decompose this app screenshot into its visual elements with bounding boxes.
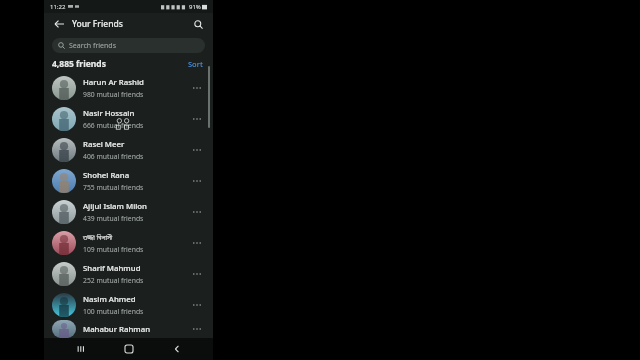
- staticText: Ajijul Islam Milon: [83, 201, 147, 212]
- staticText: 11:22: [50, 3, 66, 11]
- staticText: তজ্জা বিলাসী: [83, 232, 113, 243]
- button[interactable]: More options: [189, 235, 205, 251]
- button[interactable]: Recents: [68, 338, 92, 360]
- button[interactable]: More options: [189, 266, 205, 282]
- staticText: 980 mutual friends: [83, 90, 144, 99]
- staticText: Sharif Mahmud: [83, 263, 141, 274]
- staticText: 4,885 friends: [52, 58, 106, 70]
- staticText: Harun Ar Rashid: [83, 77, 144, 88]
- button[interactable]: Ajijul Islam Milon: [44, 196, 213, 227]
- button[interactable]: Mahabur Rahman: [44, 320, 213, 338]
- staticText: Shohel Rana: [83, 170, 130, 181]
- staticText: 252 mutual friends: [83, 276, 144, 285]
- button[interactable]: Back: [165, 338, 189, 360]
- button[interactable]: More options: [189, 142, 205, 158]
- button[interactable]: More options: [189, 297, 205, 313]
- staticText: 100 mutual friends: [83, 307, 144, 316]
- button[interactable]: Nasir Hossain: [44, 103, 213, 134]
- staticText: Nasim Ahmed: [83, 294, 136, 305]
- button[interactable]: Rasel Meer: [44, 134, 213, 165]
- staticText: Rasel Meer: [83, 139, 125, 150]
- staticText: Search friends: [69, 41, 117, 51]
- button[interactable]: More options: [189, 173, 205, 189]
- staticText: 439 mutual friends: [83, 214, 144, 223]
- staticText: Nasir Hossain: [83, 108, 135, 119]
- button[interactable]: Back: [51, 16, 67, 32]
- button[interactable]: More options: [189, 204, 205, 220]
- button[interactable]: Sort: [186, 58, 205, 70]
- button[interactable]: More options: [189, 111, 205, 127]
- staticText: 666 mutual friends: [83, 121, 144, 130]
- button[interactable]: Harun Ar Rashid: [44, 72, 213, 103]
- staticText: 406 mutual friends: [83, 152, 144, 161]
- button[interactable]: More options: [189, 80, 205, 96]
- button[interactable]: Search: [190, 16, 206, 32]
- button[interactable]: Shohel Rana: [44, 165, 213, 196]
- button[interactable]: Home: [117, 338, 141, 360]
- button[interactable]: Nasim Ahmed: [44, 289, 213, 320]
- button[interactable]: More options: [189, 321, 205, 337]
- button[interactable]: Search friends: [52, 38, 205, 53]
- staticText: Your Friends: [72, 18, 123, 30]
- staticText: 755 mutual friends: [83, 183, 144, 192]
- button[interactable]: তজ্জা বিলাসী: [44, 227, 213, 258]
- staticText: Sort: [188, 59, 203, 69]
- staticText: Mahabur Rahman: [83, 324, 151, 335]
- staticText: 109 mutual friends: [83, 245, 144, 254]
- button[interactable]: Sharif Mahmud: [44, 258, 213, 289]
- staticText: 91%: [189, 3, 201, 11]
